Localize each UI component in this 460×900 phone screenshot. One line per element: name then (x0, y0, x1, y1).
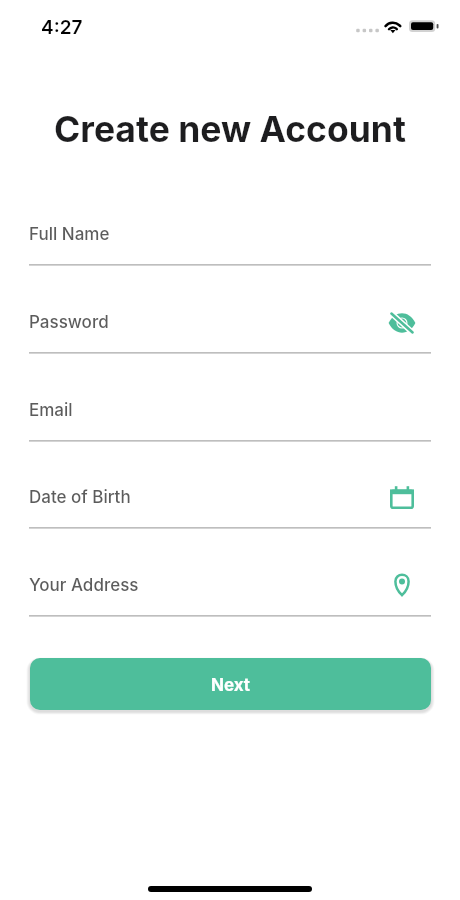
staticText: 4:27 (41, 16, 83, 39)
button[interactable]: Email (29, 397, 431, 442)
button[interactable]: Password (29, 309, 431, 354)
staticText: Next (211, 675, 251, 696)
button[interactable]: Full Name (29, 221, 431, 266)
staticText: Create new Account (54, 108, 406, 151)
button[interactable]: Pick date (387, 483, 417, 513)
other: Cellular signal (355, 27, 379, 34)
staticText: Date of Birth (29, 487, 131, 508)
button[interactable]: Next (30, 658, 431, 710)
staticText: Email (29, 400, 73, 421)
other: Battery full (408, 19, 439, 34)
button[interactable]: Pick location (387, 571, 417, 601)
other: Wi-Fi (383, 18, 404, 34)
button[interactable]: Your Address (29, 572, 431, 617)
staticText: Full Name (29, 224, 110, 245)
button[interactable]: Toggle password visibility (387, 308, 417, 338)
staticText: Your Address (29, 575, 139, 596)
staticText: Password (29, 312, 109, 333)
button[interactable]: Date of Birth (29, 484, 431, 529)
